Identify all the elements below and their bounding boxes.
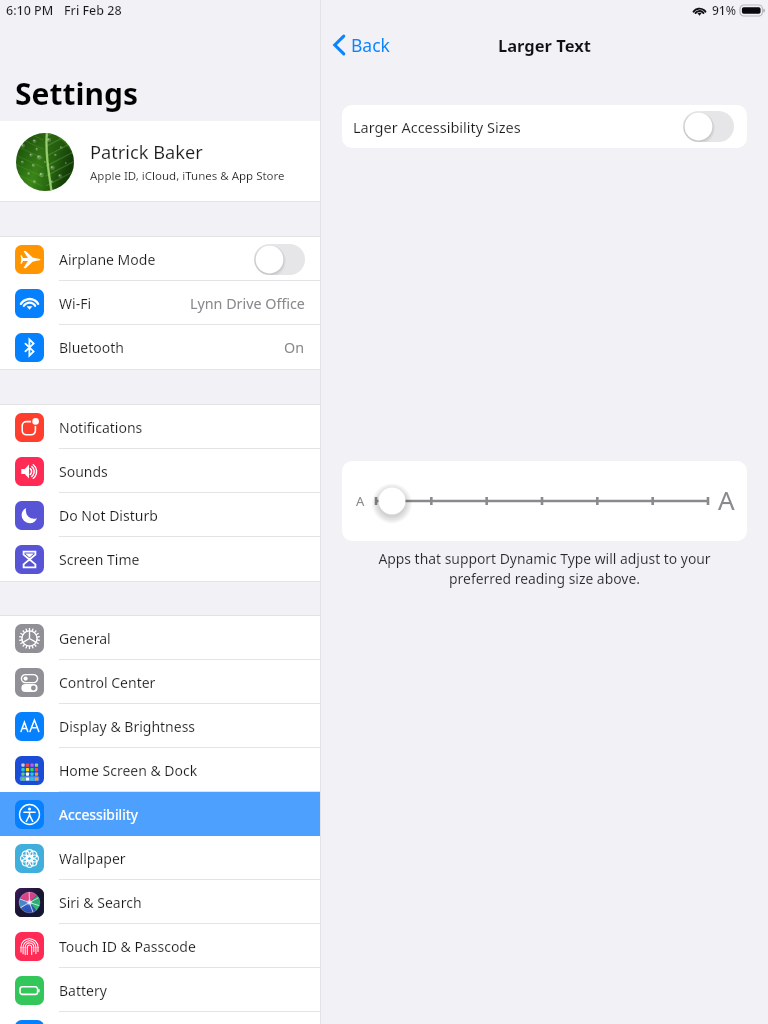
button[interactable]: Sounds <box>0 449 320 493</box>
button[interactable]: Touch ID & Passcode <box>0 924 320 968</box>
staticText: A <box>356 492 365 510</box>
button[interactable]: Text size slider <box>342 461 747 541</box>
staticText: On <box>284 338 305 357</box>
staticText: Siri & Search <box>59 893 142 912</box>
staticText: Back <box>351 33 390 57</box>
staticText: Settings <box>15 73 138 114</box>
button[interactable]: Display & Brightness <box>0 704 320 748</box>
staticText: General <box>59 629 111 648</box>
staticText: Touch ID & Passcode <box>59 937 196 956</box>
staticText: 91% <box>712 2 736 18</box>
button[interactable]: Wallpaper <box>0 836 320 880</box>
staticText: 6:10 PM <box>6 2 54 19</box>
button[interactable]: General <box>0 616 320 660</box>
staticText: Larger Text <box>498 34 591 56</box>
button[interactable]: Wi-Fi <box>0 281 320 325</box>
staticText: Wallpaper <box>59 849 126 868</box>
button[interactable]: Screen Time <box>0 537 320 581</box>
staticText: Larger Accessibility Sizes <box>353 117 521 137</box>
staticText: Battery <box>59 981 107 1000</box>
button[interactable]: Back <box>332 33 390 57</box>
staticText: Wi-Fi <box>59 294 92 313</box>
button[interactable]: Notifications <box>0 405 320 449</box>
staticText: Display & Brightness <box>59 717 196 736</box>
button[interactable]: Do Not Disturb <box>0 493 320 537</box>
button[interactable]: Toggle off <box>254 244 305 275</box>
button[interactable]: Home Screen & Dock <box>0 748 320 792</box>
button[interactable]: Control Center <box>0 660 320 704</box>
button[interactable]: Toggle off <box>683 111 734 142</box>
button[interactable]: Airplane Mode <box>0 237 320 281</box>
staticText: Apps that support Dynamic Type will adju… <box>357 549 732 589</box>
button[interactable]: Battery <box>0 968 320 1012</box>
staticText: A <box>718 482 735 517</box>
button[interactable]: Siri & Search <box>0 880 320 924</box>
staticText: Apple ID, iCloud, iTunes & App Store <box>90 168 285 184</box>
button[interactable]: Accessibility <box>0 792 320 836</box>
button[interactable]: Patrick Baker <box>0 121 320 202</box>
button[interactable]: Larger Accessibility Sizes <box>342 105 747 148</box>
staticText: Notifications <box>59 418 143 437</box>
staticText: Do Not Disturb <box>59 506 158 525</box>
staticText: Sounds <box>59 462 108 481</box>
staticText: Home Screen & Dock <box>59 761 198 780</box>
staticText: Lynn Drive Office <box>190 294 305 313</box>
button[interactable]: Privacy <box>0 1012 320 1024</box>
staticText: Control Center <box>59 673 156 692</box>
staticText: Accessibility <box>59 805 138 824</box>
button[interactable]: Bluetooth <box>0 325 320 369</box>
staticText: Airplane Mode <box>59 250 156 269</box>
staticText: Fri Feb 28 <box>64 2 122 19</box>
staticText: Screen Time <box>59 550 140 569</box>
staticText: Patrick Baker <box>90 140 203 165</box>
staticText: Bluetooth <box>59 338 124 357</box>
